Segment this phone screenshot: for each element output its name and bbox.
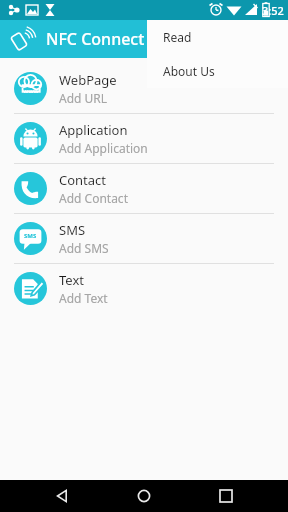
staticText: Contact — [59, 171, 107, 189]
staticText: Add Contact — [59, 190, 128, 206]
button[interactable]: SMS — [0, 214, 288, 263]
staticText: Application — [59, 121, 128, 139]
staticText: Add Text — [59, 290, 108, 306]
staticText: SMS — [59, 221, 86, 239]
staticText: NFC Connect — [46, 28, 145, 50]
staticText: Read — [163, 29, 192, 45]
button[interactable]: Recent apps — [206, 480, 246, 512]
button[interactable]: www — [0, 64, 288, 113]
staticText: SMS — [24, 232, 37, 240]
button[interactable]: Application — [0, 114, 288, 163]
button[interactable]: Back — [42, 480, 82, 512]
staticText: About Us — [163, 63, 215, 79]
staticText: Add Application — [59, 140, 148, 156]
staticText: www — [23, 87, 39, 95]
button[interactable]: About Us — [147, 54, 288, 88]
staticText: Add SMS — [59, 240, 109, 256]
button[interactable]: Contact — [0, 164, 288, 213]
staticText: WebPage — [59, 71, 117, 89]
button[interactable]: Read — [147, 20, 288, 54]
staticText: Text — [59, 271, 84, 289]
button[interactable]: Text — [0, 264, 288, 313]
button[interactable]: Home — [124, 480, 164, 512]
staticText: 3:52 — [262, 3, 284, 18]
staticText: Add URL — [59, 90, 108, 106]
